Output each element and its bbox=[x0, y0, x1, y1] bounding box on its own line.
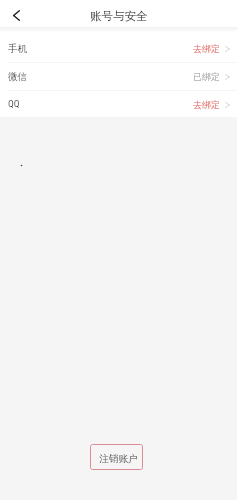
button[interactable]: Back bbox=[5, 4, 27, 26]
button[interactable]: 手机 bbox=[0, 35, 237, 63]
staticText: 注销账户 bbox=[99, 453, 138, 465]
staticText: 微信 bbox=[8, 71, 28, 83]
staticText: 账号与安全 bbox=[90, 9, 148, 23]
staticText: 已绑定 bbox=[193, 71, 220, 82]
staticText: 去绑定 bbox=[193, 43, 220, 54]
button[interactable]: 微信 bbox=[0, 63, 237, 91]
button[interactable]: 注销账户 bbox=[90, 444, 143, 470]
staticText: 手机 bbox=[8, 43, 28, 55]
button[interactable]: QQ bbox=[0, 91, 237, 119]
staticText: QQ bbox=[8, 98, 20, 109]
staticText: 去绑定 bbox=[193, 99, 220, 110]
